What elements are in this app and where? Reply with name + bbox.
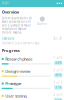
staticText: Updated just a moment ago (2, 41, 40, 45)
staticText: Lorem ipsum dolor sit amet consectetur e… (2, 16, 32, 34)
staticText: Prototype (5, 81, 21, 86)
staticText: 46% (55, 73, 61, 77)
staticText: 9:41 (2, 2, 9, 5)
staticText: 63% (55, 98, 61, 100)
staticText: Author (37, 22, 47, 26)
staticText: User testing (5, 93, 26, 98)
staticText: 3 of 5 (53, 81, 62, 84)
button[interactable]: Research phase (0, 55, 64, 67)
button[interactable]: Design review (0, 67, 64, 79)
staticText: 2 of 5 (53, 69, 62, 72)
staticText: See all (53, 37, 62, 40)
button[interactable]: User testing (0, 91, 64, 100)
button[interactable]: Prototype (0, 79, 64, 91)
staticText: 24% (55, 61, 61, 65)
staticText: 4 of 5 (53, 93, 62, 97)
staticText: Research phase (5, 56, 32, 62)
staticText: Category (2, 37, 14, 40)
staticText: 31% (55, 86, 61, 89)
staticText: 1 of 5 (53, 56, 62, 60)
staticText: Overview (2, 9, 19, 14)
staticText: Progress (2, 48, 20, 53)
staticText: Design review (5, 69, 30, 74)
